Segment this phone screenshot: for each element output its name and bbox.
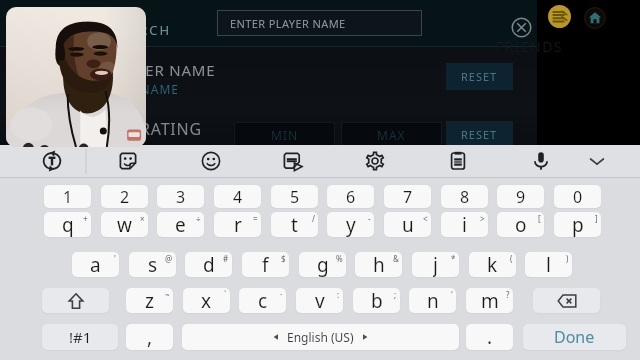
staticText: # xyxy=(223,253,229,264)
button[interactable]: Settings xyxy=(361,147,389,175)
button[interactable]: y xyxy=(327,212,374,237)
button[interactable]: e xyxy=(157,212,204,237)
staticText: u xyxy=(402,212,414,237)
staticText: l xyxy=(546,252,551,277)
staticText: < xyxy=(423,213,428,224)
button[interactable]: Backspace xyxy=(533,288,600,313)
staticText: w xyxy=(117,212,132,237)
staticText: FRIENDS xyxy=(496,37,563,56)
staticText: h xyxy=(373,252,385,277)
staticText: 2 xyxy=(120,186,130,208)
staticText: k xyxy=(487,252,498,277)
staticText: ( xyxy=(510,253,513,264)
button[interactable]: 8 xyxy=(441,185,488,208)
button[interactable]: , xyxy=(126,324,173,350)
staticText: e xyxy=(175,212,186,237)
staticText: d xyxy=(203,252,215,277)
button[interactable]: j xyxy=(412,252,459,277)
button[interactable]: Done xyxy=(523,324,626,350)
button[interactable]: RESET xyxy=(446,121,513,148)
staticText: Done xyxy=(554,326,595,348)
button[interactable]: a xyxy=(72,252,119,277)
button[interactable]: Hide keyboard xyxy=(583,147,611,175)
button[interactable]: x xyxy=(183,288,230,313)
button[interactable]: Clipboard xyxy=(444,147,472,175)
button[interactable]: c xyxy=(239,288,286,313)
button[interactable]: !#1 xyxy=(42,324,118,350)
staticText: ENTER PLAYER NAME xyxy=(230,16,346,31)
staticText: y xyxy=(346,212,356,237)
button[interactable]: Shift xyxy=(42,288,109,313)
button[interactable]: 2 xyxy=(101,185,148,208)
button[interactable]: . xyxy=(466,324,513,350)
staticText: i xyxy=(462,212,467,237)
staticText: 5 xyxy=(290,186,300,208)
button[interactable]: s xyxy=(129,252,176,277)
button[interactable]: m xyxy=(466,288,513,313)
button[interactable]: 3 xyxy=(157,185,204,208)
staticText: @ xyxy=(165,253,173,264)
staticText: . xyxy=(487,324,493,350)
button[interactable]: p xyxy=(554,212,601,237)
button[interactable]: n xyxy=(409,288,456,313)
button[interactable]: 4 xyxy=(214,185,261,208)
staticText: ÷ xyxy=(196,213,201,224)
button[interactable]: v xyxy=(296,288,343,313)
button[interactable]: Filter xyxy=(548,5,571,28)
button[interactable]: Emoji xyxy=(197,147,225,175)
button[interactable]: b xyxy=(353,288,400,313)
staticText: SEARCH xyxy=(111,21,172,39)
staticText: s xyxy=(148,252,158,277)
button[interactable]: 7 xyxy=(384,185,431,208)
staticText: : xyxy=(337,289,340,300)
button[interactable]: Sticker xyxy=(114,147,142,175)
button[interactable]: Close xyxy=(511,17,532,38)
button[interactable]: 1 xyxy=(44,185,91,208)
button[interactable]: 5 xyxy=(271,185,318,208)
button[interactable]: 6 xyxy=(327,185,374,208)
button[interactable]: GIF xyxy=(278,147,306,175)
button[interactable]: o xyxy=(497,212,544,237)
staticText: 6 xyxy=(346,186,356,208)
button[interactable]: 9 xyxy=(497,185,544,208)
staticText: 1 xyxy=(63,186,73,208)
staticText: x xyxy=(201,288,212,313)
button[interactable]: d xyxy=(185,252,232,277)
staticText: & xyxy=(393,253,399,264)
staticText: · xyxy=(280,289,283,300)
staticText: ; xyxy=(394,289,397,300)
button[interactable]: MAX xyxy=(341,122,442,148)
button[interactable]: h xyxy=(355,252,402,277)
staticText: * xyxy=(451,253,456,264)
button[interactable]: English (US) xyxy=(182,324,459,350)
button[interactable]: q xyxy=(44,212,91,237)
staticText: MIN xyxy=(271,127,299,143)
button[interactable]: f xyxy=(242,252,289,277)
staticText: AREA NAME xyxy=(103,81,179,97)
staticText: ` xyxy=(224,289,227,300)
button[interactable]: i xyxy=(441,212,488,237)
staticText: q xyxy=(62,212,74,237)
staticText: z xyxy=(145,288,154,313)
staticText: c xyxy=(258,288,268,313)
button[interactable]: r xyxy=(214,212,261,237)
button[interactable]: z xyxy=(126,288,173,313)
staticText: PLAYER NAME xyxy=(108,60,216,80)
staticText: [ xyxy=(538,213,541,224)
button[interactable]: Translate xyxy=(38,147,66,175)
button[interactable]: u xyxy=(384,212,431,237)
staticText: $ xyxy=(281,253,286,264)
button[interactable]: 0 xyxy=(554,185,601,208)
button[interactable]: RESET xyxy=(446,63,513,90)
button[interactable]: l xyxy=(525,252,572,277)
button[interactable]: k xyxy=(469,252,516,277)
button[interactable]: Voice input xyxy=(527,147,555,175)
staticText: 4 xyxy=(233,186,243,208)
staticText: = xyxy=(253,213,258,224)
button[interactable]: w xyxy=(101,212,148,237)
button[interactable]: MIN xyxy=(234,122,335,148)
button[interactable]: t xyxy=(271,212,318,237)
button[interactable]: g xyxy=(299,252,346,277)
button[interactable]: ENTER PLAYER NAME xyxy=(217,10,422,36)
button[interactable]: Home xyxy=(584,7,606,29)
